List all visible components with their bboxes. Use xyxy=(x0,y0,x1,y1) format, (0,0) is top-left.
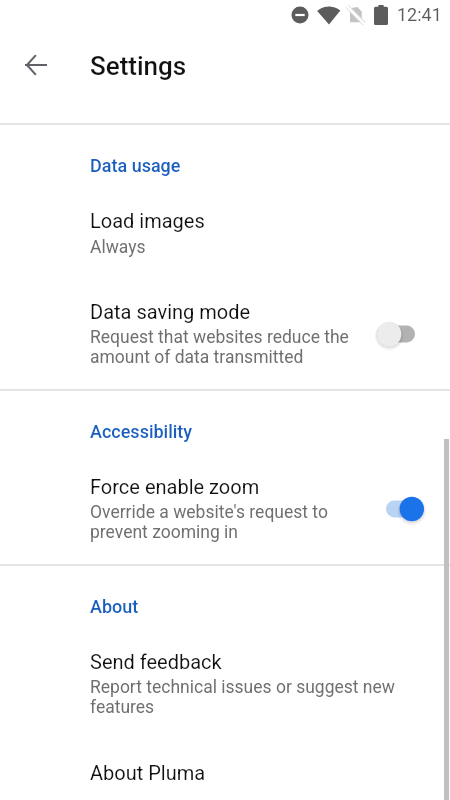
staticText: Report technical issues or suggest new f… xyxy=(90,677,395,717)
button[interactable]: Switch on xyxy=(377,485,433,533)
button[interactable]: Send feedback xyxy=(0,643,450,725)
button[interactable]: Switch off xyxy=(368,310,424,358)
button[interactable]: About Pluma xyxy=(0,754,450,794)
staticText: Override a website's request to prevent … xyxy=(90,502,328,542)
button[interactable]: Back xyxy=(11,41,59,89)
staticText: Data saving mode xyxy=(90,300,251,323)
button[interactable]: Force enable zoom xyxy=(0,468,450,550)
staticText: Always xyxy=(90,237,146,258)
staticText: Data usage xyxy=(90,155,181,176)
staticText: About xyxy=(90,596,139,617)
staticText: 12:41 xyxy=(397,4,442,25)
staticText: Force enable zoom xyxy=(90,475,260,498)
staticText: Settings xyxy=(90,51,187,81)
button[interactable]: Data saving mode xyxy=(0,293,450,375)
staticText: Accessibility xyxy=(90,421,193,442)
staticText: Load images xyxy=(90,209,205,232)
staticText: Request that websites reduce the amount … xyxy=(90,327,349,367)
staticText: About Pluma xyxy=(90,761,206,784)
button[interactable]: Load images xyxy=(0,202,450,265)
staticText: Send feedback xyxy=(90,650,222,673)
